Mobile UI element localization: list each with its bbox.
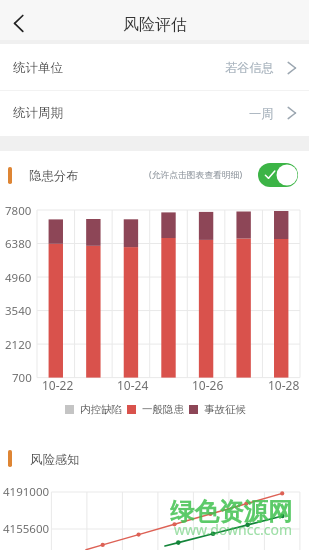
staticText: www.downcc.com (174, 520, 293, 539)
staticText: 4155600 (3, 521, 50, 536)
staticText: 统计周期 (13, 105, 63, 121)
staticText: 7800 (5, 203, 32, 218)
staticText: 4191000 (3, 484, 50, 499)
staticText: 一般隐患 (142, 403, 184, 416)
staticText: 事故征候 (204, 403, 246, 416)
staticText: 10-22 (42, 377, 74, 393)
staticText: 隐患分布 (29, 168, 79, 184)
staticText: 绿色资源网 (170, 496, 293, 527)
staticText: 700 (12, 370, 32, 385)
staticText: (允许点击图表查看明细) (149, 169, 243, 181)
staticText: 10-28 (268, 377, 300, 393)
staticText: 4960 (5, 270, 32, 285)
button[interactable]: 统计周期 (0, 91, 309, 135)
staticText: 2120 (5, 337, 32, 352)
staticText: 风险感知 (30, 452, 80, 468)
staticText: 10-24 (117, 377, 149, 393)
staticText: 6380 (5, 236, 32, 251)
staticText: 一周 (249, 106, 274, 121)
staticText: 3540 (5, 303, 32, 318)
button[interactable]: Toggle chart detail (258, 163, 298, 187)
staticText: 统计单位 (13, 60, 63, 76)
staticText: 内控缺陷 (80, 403, 122, 416)
staticText: 风险评估 (123, 15, 187, 35)
button[interactable]: Back (0, 0, 38, 40)
staticText: 若谷信息 (225, 60, 274, 75)
staticText: 10-26 (192, 377, 224, 393)
button[interactable]: 统计单位 (0, 44, 309, 91)
